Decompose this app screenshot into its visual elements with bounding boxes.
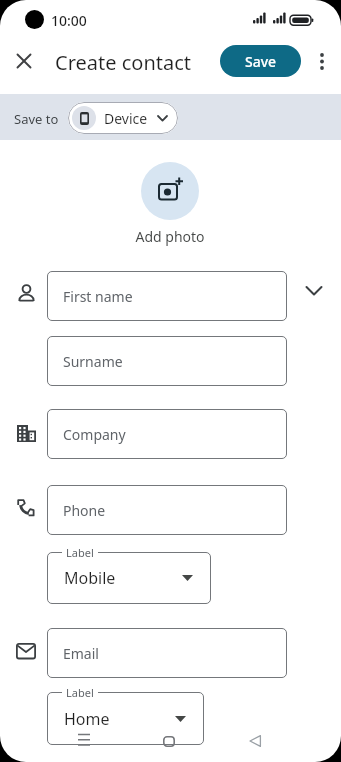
staticText: 10:00 [51, 11, 87, 30]
button[interactable]: Company [47, 409, 287, 459]
button[interactable] [8, 45, 40, 77]
staticText: Email [63, 644, 99, 663]
button[interactable] [78, 733, 90, 746]
button[interactable] [248, 734, 262, 748]
staticText: Label [66, 545, 94, 560]
staticText: First name [63, 287, 133, 306]
staticText: Surname [63, 352, 123, 371]
button[interactable] [163, 736, 175, 747]
staticText: Mobile [64, 567, 116, 589]
staticText: Company [63, 425, 126, 444]
button[interactable]: Email [47, 628, 287, 678]
staticText: Label [66, 685, 94, 700]
button[interactable] [302, 282, 330, 310]
button[interactable]: Device [68, 102, 178, 134]
staticText: Add photo [110, 227, 230, 246]
button[interactable]: Mobile [47, 552, 211, 604]
button[interactable]: Save [220, 45, 301, 77]
staticText: Create contact [55, 49, 192, 76]
staticText: Device [104, 109, 148, 128]
button[interactable]: Home [47, 692, 204, 745]
staticText: Save to [14, 110, 59, 128]
staticText: Phone [63, 501, 106, 520]
staticText: Save [245, 52, 277, 71]
staticText: Home [64, 708, 110, 730]
button[interactable] [308, 47, 336, 75]
button[interactable]: Phone [47, 485, 287, 535]
button[interactable]: First name [47, 271, 287, 321]
button[interactable]: Surname [47, 336, 287, 386]
button[interactable] [141, 162, 199, 220]
